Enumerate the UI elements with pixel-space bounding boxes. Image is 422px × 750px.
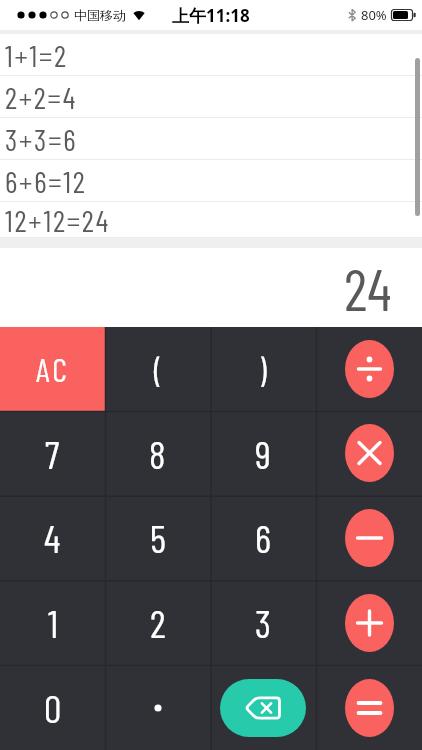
button[interactable]: 2+2=4 (0, 76, 422, 118)
button[interactable] (220, 679, 306, 737)
staticText: 0 (44, 684, 62, 731)
staticText: 8 (149, 430, 166, 477)
staticText: AC (36, 349, 70, 389)
staticText: 6+6=12 (5, 163, 87, 199)
button[interactable]: 5 (105, 495, 210, 580)
staticText: 2 (150, 599, 166, 646)
staticText: 4 (44, 514, 61, 561)
button[interactable]: ( (105, 327, 210, 411)
button[interactable]: AC (0, 327, 105, 411)
button[interactable]: 8 (105, 411, 210, 495)
staticText: 12+12=24 (5, 202, 110, 238)
button[interactable] (345, 509, 394, 567)
staticText: 2+2=4 (5, 79, 77, 115)
button[interactable]: 1 (0, 580, 105, 665)
button[interactable]: 1+1=2 (0, 34, 422, 76)
staticText: ( (154, 349, 162, 390)
button[interactable] (345, 594, 394, 652)
button[interactable] (345, 679, 394, 737)
staticText: 1 (48, 599, 58, 646)
staticText: 80% (361, 6, 387, 24)
staticText: 1+1=2 (5, 37, 68, 73)
button[interactable]: 6+6=12 (0, 160, 422, 202)
button[interactable]: ) (210, 327, 316, 411)
staticText: 5 (150, 514, 166, 561)
button[interactable]: 7 (0, 411, 105, 495)
button[interactable]: 3+3=6 (0, 118, 422, 160)
button[interactable]: 0 (0, 665, 105, 750)
button[interactable]: 6 (210, 495, 316, 580)
staticText: 上午11:18 (172, 4, 250, 27)
button[interactable]: 4 (0, 495, 105, 580)
button[interactable]: 2 (105, 580, 210, 665)
button[interactable]: 3 (210, 580, 316, 665)
staticText: 中国移动 (74, 7, 126, 23)
button[interactable] (345, 340, 394, 398)
staticText: 3 (255, 599, 271, 646)
button[interactable]: 9 (210, 411, 316, 495)
staticText: 24 (344, 253, 392, 323)
staticText: 7 (45, 430, 60, 477)
staticText: ) (259, 349, 267, 390)
button[interactable] (105, 665, 210, 750)
staticText: 6 (255, 514, 271, 561)
button[interactable] (345, 424, 394, 482)
staticText: 3+3=6 (5, 121, 78, 157)
staticText: 9 (255, 430, 271, 477)
button[interactable]: 12+12=24 (0, 202, 422, 238)
